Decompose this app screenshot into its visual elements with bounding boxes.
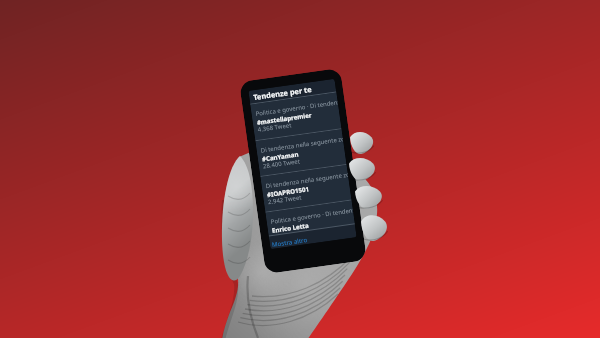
staticText: #IOAPRO1501 <box>266 184 310 198</box>
staticText: Tendenze per te <box>252 84 312 102</box>
staticText: #CanYaman <box>261 149 299 163</box>
staticText: 2.942 Tweet <box>267 193 302 206</box>
button[interactable]: Politica e governo · Di tendenza <box>265 200 355 235</box>
button[interactable]: Politica e governo · Di tendenza <box>250 93 341 140</box>
staticText: Politica e governo · Di tendenza <box>255 98 338 118</box>
button[interactable]: Di tendenza nella seguente zona <box>260 165 351 212</box>
staticText: #mastellapremier <box>256 110 313 126</box>
staticText: 28.400 Tweet <box>262 157 301 170</box>
staticText: 4.368 Tweet <box>257 121 292 134</box>
staticText: Enrico Letta <box>271 221 310 234</box>
staticText: Di tendenza nella seguente zona <box>260 135 343 155</box>
staticText: Di tendenza nella seguente zona <box>265 171 348 190</box>
staticText: Mostra altro <box>271 235 308 248</box>
staticText: Politica e governo · Di tendenza <box>270 206 353 226</box>
button[interactable]: Mostra altro <box>269 224 357 248</box>
button[interactable]: Di tendenza nella seguente zona <box>255 129 346 176</box>
